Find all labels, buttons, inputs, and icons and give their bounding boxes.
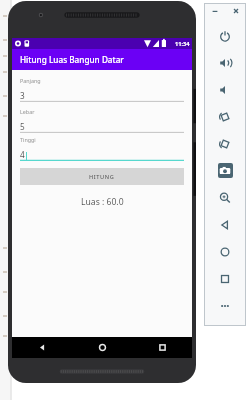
staticText: 5 — [20, 121, 25, 132]
staticText: HITUNG — [89, 173, 115, 181]
button[interactable]: Overview — [204, 265, 246, 292]
staticText: 4 — [20, 149, 25, 160]
button[interactable]: HITUNG — [20, 168, 184, 185]
button[interactable]: Volume down — [204, 76, 246, 103]
staticText: Hitung Luas Bangun Datar — [20, 54, 124, 65]
button[interactable]: Volume up — [204, 49, 246, 76]
button[interactable]: Close — [225, 3, 246, 19]
staticText: Tinggi — [20, 136, 36, 143]
button[interactable]: More — [204, 292, 246, 319]
button[interactable]: Take screenshot — [204, 157, 246, 184]
button[interactable]: Zoom — [204, 184, 246, 211]
staticText: 3 — [20, 90, 25, 101]
staticText: 11:34 — [175, 40, 190, 48]
button[interactable]: Rotate right — [204, 130, 246, 157]
staticText: Luas : 60.0 — [81, 196, 124, 208]
button[interactable]: 4 — [20, 148, 184, 161]
button[interactable]: Back — [204, 211, 246, 238]
button[interactable]: 3 — [20, 89, 184, 102]
button[interactable]: Power — [204, 22, 246, 49]
button[interactable]: Rotate left — [204, 103, 246, 130]
button[interactable]: 5 — [20, 120, 184, 133]
button[interactable]: Minimize — [204, 3, 225, 19]
button[interactable]: Recent apps — [132, 337, 192, 358]
button[interactable]: Home — [204, 238, 246, 265]
button[interactable]: Home — [72, 337, 132, 358]
button[interactable]: Back — [12, 337, 72, 358]
staticText: Panjang — [20, 77, 41, 84]
staticText: Lebar — [20, 108, 35, 115]
